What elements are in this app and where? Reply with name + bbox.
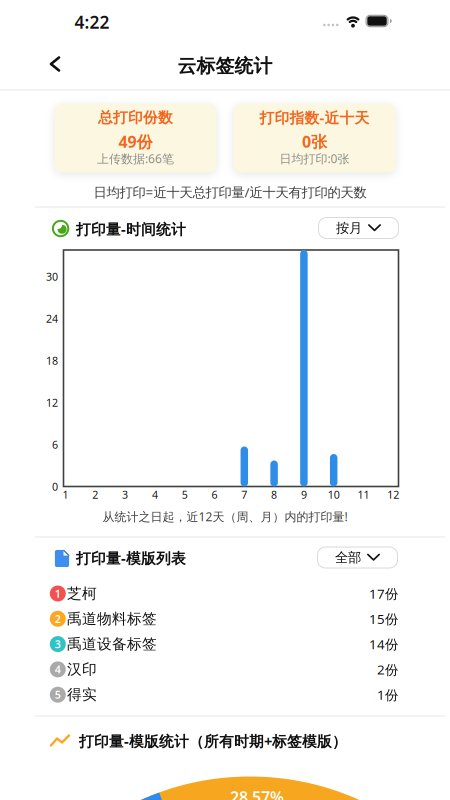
staticText: 15份 xyxy=(369,610,398,628)
staticText: 4 xyxy=(152,487,158,502)
staticText: 4 xyxy=(55,662,61,676)
staticText: 1 xyxy=(62,487,68,502)
staticText: 从统计之日起，近12天（周、月）内的打印量! xyxy=(102,508,347,524)
staticText: 12 xyxy=(46,395,58,410)
staticText: 云标签统计 xyxy=(177,54,272,77)
staticText: 2 xyxy=(92,487,98,502)
staticText: 总打印份数 xyxy=(98,108,173,126)
button[interactable]: 总打印份数 xyxy=(54,103,216,172)
staticText: 2份 xyxy=(377,660,398,678)
staticText: 3 xyxy=(122,487,128,502)
button[interactable]: 按月 xyxy=(318,217,399,239)
staticText: 17份 xyxy=(369,585,398,602)
button[interactable]: 1 xyxy=(35,580,415,606)
staticText: 5 xyxy=(55,688,61,702)
staticText: 28.57% xyxy=(230,786,284,800)
staticText: 3 xyxy=(55,637,61,651)
button[interactable]: 全部 xyxy=(317,546,398,568)
button[interactable]: 3 xyxy=(35,631,415,657)
staticText: 打印指数-近十天 xyxy=(259,108,369,127)
button[interactable]: 打印指数-近十天 xyxy=(233,103,395,172)
button[interactable] xyxy=(39,46,70,81)
staticText: 得实 xyxy=(67,686,97,704)
staticText: 上传数据:66笔 xyxy=(97,150,174,166)
staticText: 7 xyxy=(241,487,247,502)
staticText: 5 xyxy=(182,487,188,502)
staticText: 18 xyxy=(46,353,58,368)
staticText: 芝柯 xyxy=(67,584,97,602)
staticText: 14份 xyxy=(369,635,398,653)
staticText: 12 xyxy=(387,487,399,502)
staticText: 8 xyxy=(271,487,277,502)
button[interactable]: 5 xyxy=(35,682,415,708)
staticText: 2 xyxy=(55,612,61,626)
staticText: 6 xyxy=(52,437,58,452)
staticText: 0 xyxy=(52,479,58,494)
staticText: 4:22 xyxy=(74,10,109,33)
staticText: 0张 xyxy=(302,131,327,152)
staticText: 打印量-时间统计 xyxy=(76,219,186,239)
staticText: 24 xyxy=(46,311,58,326)
button[interactable]: 4 xyxy=(35,656,415,682)
staticText: 全部 xyxy=(335,549,361,566)
staticText: 11 xyxy=(357,487,369,502)
staticText: 日均打印:0张 xyxy=(279,150,349,166)
button[interactable]: 2 xyxy=(35,606,415,632)
staticText: 日均打印=近十天总打印量/近十天有打印的天数 xyxy=(93,183,366,201)
staticText: 6 xyxy=(211,487,217,502)
staticText: 禹道设备标签 xyxy=(67,635,157,653)
staticText: 9 xyxy=(301,487,307,502)
staticText: 30 xyxy=(46,269,58,284)
staticText: 按月 xyxy=(336,220,362,236)
staticText: 49份 xyxy=(118,131,152,152)
staticText: 打印量-模版列表 xyxy=(76,548,186,568)
staticText: 汉印 xyxy=(67,660,97,678)
staticText: 禹道物料标签 xyxy=(67,610,157,628)
staticText: 打印量-模版统计（所有时期+标签模版） xyxy=(79,731,347,751)
staticText: 1 xyxy=(55,586,61,601)
staticText: 1份 xyxy=(377,686,398,703)
staticText: 10 xyxy=(328,487,340,502)
